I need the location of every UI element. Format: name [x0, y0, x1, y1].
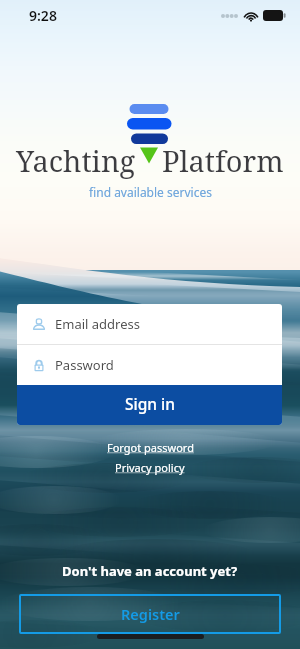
staticText: 9:28: [29, 6, 57, 25]
staticText: Platform: [162, 141, 284, 180]
button[interactable]: Register: [19, 594, 281, 634]
button[interactable]: Forgot password: [101, 438, 200, 457]
staticText: Register: [121, 604, 180, 624]
button[interactable]: Password: [17, 345, 282, 385]
staticText: Password: [55, 356, 114, 374]
staticText: Email address: [55, 315, 140, 333]
staticText: Don't have an account yet?: [62, 562, 238, 580]
button[interactable]: Privacy policy: [109, 458, 191, 477]
staticText: Sign in: [125, 393, 175, 414]
staticText: find available services: [89, 184, 212, 200]
staticText: Privacy policy: [115, 460, 185, 475]
button[interactable]: Email address: [17, 304, 282, 344]
staticText: Yachting: [16, 141, 136, 180]
staticText: Forgot password: [107, 440, 194, 455]
button[interactable]: Sign in: [17, 385, 282, 425]
